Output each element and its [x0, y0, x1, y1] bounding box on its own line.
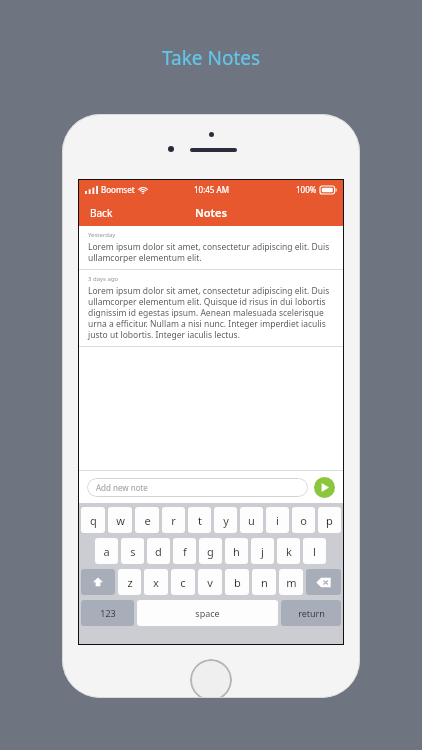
- staticText: e: [144, 513, 151, 528]
- button[interactable]: i: [266, 507, 289, 533]
- staticText: o: [300, 513, 307, 528]
- staticText: a: [103, 544, 110, 559]
- button[interactable]: f: [173, 538, 196, 564]
- staticText: w: [116, 513, 125, 528]
- staticText: Notes: [195, 205, 227, 220]
- staticText: Lorem ipsum dolor sit amet, consectetur …: [88, 285, 334, 340]
- button[interactable]: 123: [81, 600, 134, 626]
- staticText: space: [195, 607, 220, 619]
- staticText: Back: [90, 206, 113, 220]
- button[interactable]: n: [252, 569, 276, 595]
- button[interactable]: Shift: [81, 569, 115, 595]
- staticText: r: [171, 513, 176, 528]
- staticText: Yesterday: [88, 231, 116, 239]
- staticText: z: [127, 575, 133, 590]
- staticText: q: [90, 513, 97, 528]
- staticText: x: [153, 575, 159, 590]
- button[interactable]: k: [277, 538, 300, 564]
- staticText: n: [261, 575, 268, 590]
- staticText: m: [286, 575, 297, 590]
- staticText: 100%: [296, 184, 317, 195]
- button[interactable]: z: [118, 569, 141, 595]
- staticText: 123: [100, 607, 116, 619]
- button[interactable]: space: [137, 600, 278, 626]
- button[interactable]: Backspace: [306, 569, 341, 595]
- button[interactable]: c: [171, 569, 195, 595]
- staticText: Lorem ipsum dolor sit amet, consectetur …: [88, 241, 334, 263]
- button[interactable]: return: [281, 600, 341, 626]
- staticText: v: [207, 575, 213, 590]
- button[interactable]: r: [162, 507, 185, 533]
- staticText: b: [234, 575, 241, 590]
- staticText: h: [233, 544, 240, 559]
- staticText: u: [248, 513, 255, 528]
- button[interactable]: p: [318, 507, 341, 533]
- button[interactable]: Yesterday: [79, 226, 343, 269]
- button[interactable]: q: [81, 507, 105, 533]
- button[interactable]: w: [108, 507, 132, 533]
- staticText: Boomset: [101, 184, 135, 195]
- button[interactable]: a: [95, 538, 118, 564]
- staticText: Take Notes: [162, 45, 261, 71]
- staticText: Add new note: [96, 482, 148, 493]
- button[interactable]: h: [225, 538, 248, 564]
- staticText: d: [155, 544, 162, 559]
- button[interactable]: y: [214, 507, 237, 533]
- staticText: 10:45 AM: [194, 184, 229, 195]
- button[interactable]: l: [303, 538, 326, 564]
- button[interactable]: o: [292, 507, 315, 533]
- staticText: y: [223, 513, 229, 528]
- staticText: j: [261, 544, 264, 559]
- button[interactable]: v: [198, 569, 222, 595]
- button[interactable]: Home: [190, 659, 232, 698]
- staticText: g: [207, 544, 214, 559]
- button[interactable]: Add new note: [87, 478, 308, 497]
- staticText: s: [130, 544, 136, 559]
- button[interactable]: g: [199, 538, 222, 564]
- button[interactable]: Send note: [314, 477, 335, 498]
- button[interactable]: Back: [79, 199, 124, 226]
- button[interactable]: d: [147, 538, 170, 564]
- staticText: l: [313, 544, 316, 559]
- staticText: c: [180, 575, 186, 590]
- button[interactable]: s: [121, 538, 144, 564]
- staticText: i: [276, 513, 279, 528]
- staticText: k: [286, 544, 292, 559]
- button[interactable]: x: [144, 569, 168, 595]
- button[interactable]: b: [225, 569, 249, 595]
- button[interactable]: m: [279, 569, 303, 595]
- button[interactable]: e: [135, 507, 159, 533]
- button[interactable]: t: [188, 507, 211, 533]
- button[interactable]: u: [240, 507, 263, 533]
- button[interactable]: j: [251, 538, 274, 564]
- staticText: p: [326, 513, 333, 528]
- staticText: t: [198, 513, 202, 528]
- staticText: return: [298, 607, 325, 619]
- staticText: 3 days ago: [88, 275, 119, 283]
- button[interactable]: 3 days ago: [79, 270, 343, 346]
- staticText: f: [183, 544, 187, 559]
